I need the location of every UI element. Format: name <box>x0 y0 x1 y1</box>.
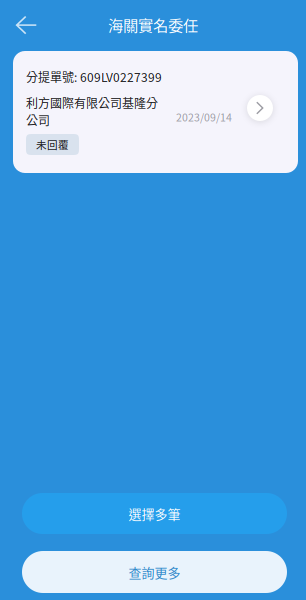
staticText: 分提單號: 609LV0227399 <box>26 68 162 85</box>
staticText: 2023/09/14 <box>176 109 232 125</box>
button[interactable]: Back <box>4 2 48 48</box>
staticText: 選擇多筆 <box>128 504 180 523</box>
staticText: 未回覆 <box>36 137 69 152</box>
button[interactable]: 選擇多筆 <box>22 493 287 534</box>
staticText: 海關實名委任 <box>108 13 198 36</box>
button[interactable]: 查詢更多 <box>22 551 287 593</box>
staticText: 利方國際有限公司基隆分公司 <box>26 94 158 129</box>
staticText: 查詢更多 <box>128 563 180 581</box>
button[interactable]: 分提單號: 609LV0227399 <box>13 51 298 173</box>
